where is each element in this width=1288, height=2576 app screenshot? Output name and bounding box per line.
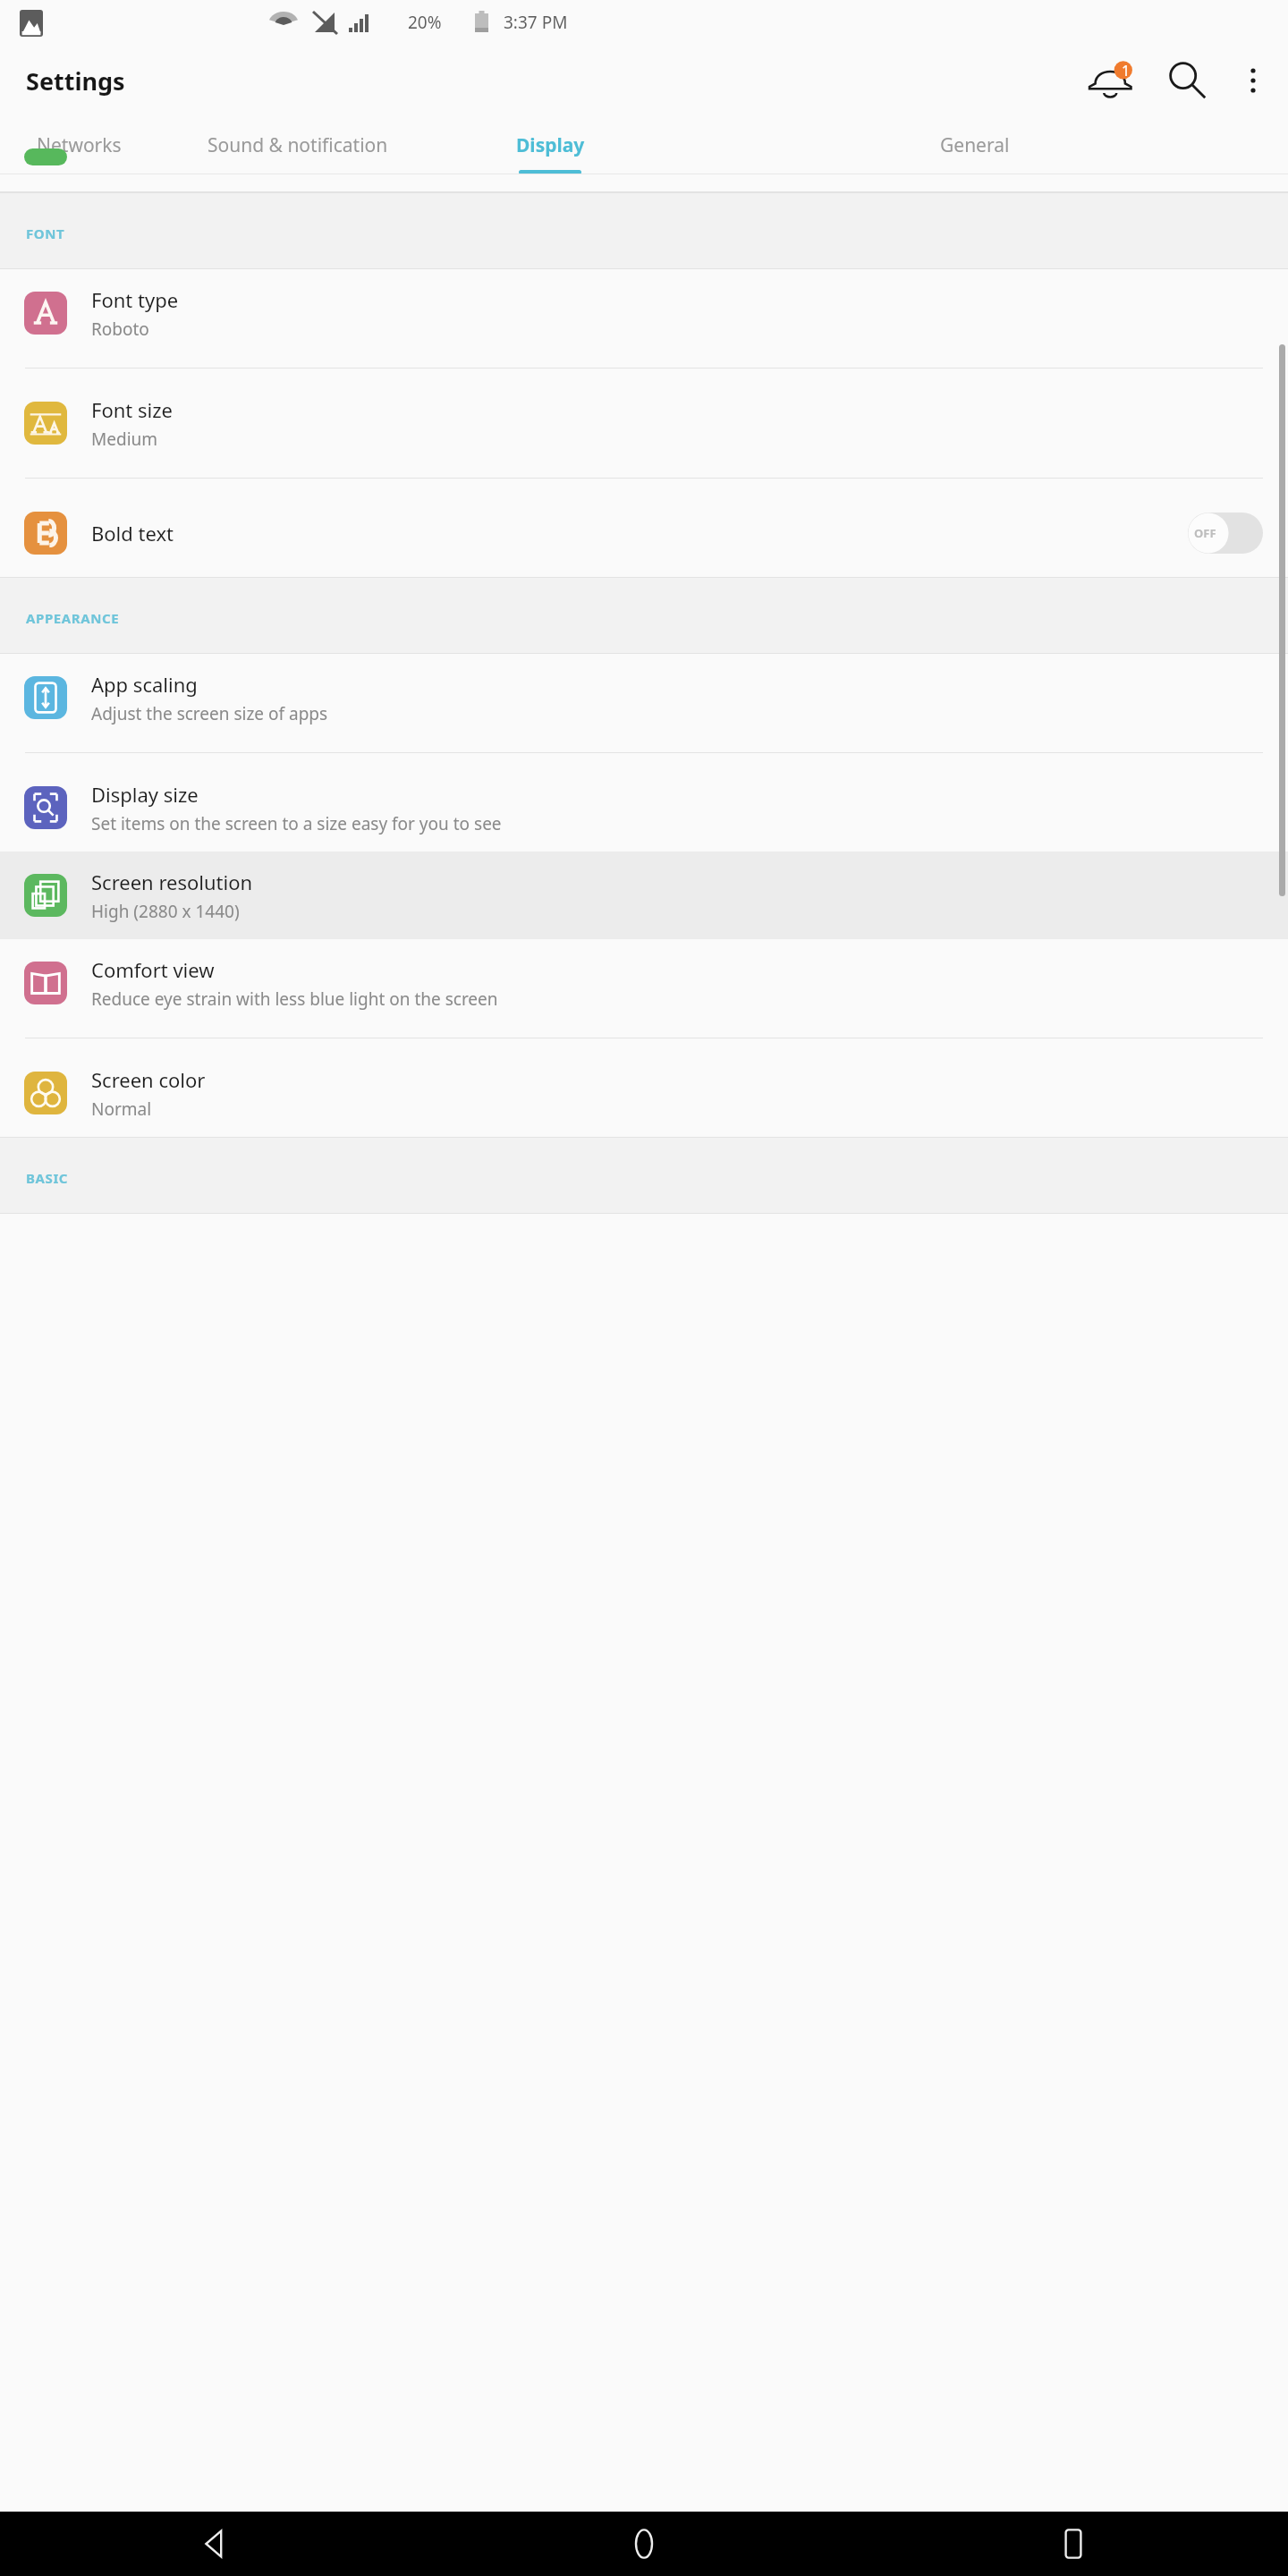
staticText: 20% xyxy=(408,11,442,34)
staticText: General xyxy=(940,132,1010,158)
button[interactable]: Screen resolution xyxy=(0,852,1288,939)
button[interactable]: Back xyxy=(188,2517,241,2571)
staticText: High (2880 x 1440) xyxy=(91,900,240,923)
staticText: Comfort view xyxy=(91,956,215,983)
staticText: App scaling xyxy=(91,671,198,698)
staticText: Normal xyxy=(91,1097,152,1121)
staticText: Adjust the screen size of apps xyxy=(91,702,328,725)
button[interactable]: Notifications, 1 new xyxy=(1086,55,1138,106)
button[interactable]: Display xyxy=(438,116,662,174)
staticText: Reduce eye strain with less blue light o… xyxy=(91,987,498,1011)
button[interactable]: App scaling xyxy=(0,654,1288,741)
staticText: Sound & notification xyxy=(208,132,388,158)
button[interactable]: Bold text toggle, off xyxy=(1188,513,1263,554)
staticText: 1 xyxy=(1122,61,1131,80)
button[interactable]: Bold text xyxy=(0,489,1288,577)
staticText: Set items on the screen to a size easy f… xyxy=(91,812,502,835)
staticText: BASIC xyxy=(26,1169,69,1187)
staticText: APPEARANCE xyxy=(26,609,120,627)
button[interactable]: Font type xyxy=(0,269,1288,357)
button[interactable]: More options xyxy=(1231,58,1275,103)
button[interactable]: Sound & notification xyxy=(157,116,438,174)
staticText: Roboto xyxy=(91,318,149,341)
staticText: 3:37 PM xyxy=(504,11,568,34)
staticText: Settings xyxy=(26,64,125,97)
button[interactable]: Comfort view xyxy=(0,939,1288,1027)
button[interactable]: General xyxy=(662,116,1288,174)
staticText: Font type xyxy=(91,286,179,313)
button[interactable]: Screen color xyxy=(0,1049,1288,1137)
button[interactable]: Networks xyxy=(0,116,157,174)
staticText: Display xyxy=(516,132,585,158)
staticText: Font size xyxy=(91,396,173,423)
staticText: OFF xyxy=(1194,525,1216,541)
button[interactable]: Font size xyxy=(0,379,1288,467)
staticText: Medium xyxy=(91,428,158,451)
button[interactable]: Display size xyxy=(0,764,1288,852)
button[interactable]: Home xyxy=(617,2517,671,2571)
button[interactable]: Search xyxy=(1163,56,1211,105)
button[interactable]: Recents xyxy=(1046,2517,1100,2571)
staticText: Screen resolution xyxy=(91,869,253,895)
staticText: Screen color xyxy=(91,1066,206,1093)
staticText: Bold text xyxy=(91,520,174,547)
staticText: FONT xyxy=(26,225,65,242)
staticText: Networks xyxy=(37,132,122,158)
staticText: Display size xyxy=(91,781,199,808)
